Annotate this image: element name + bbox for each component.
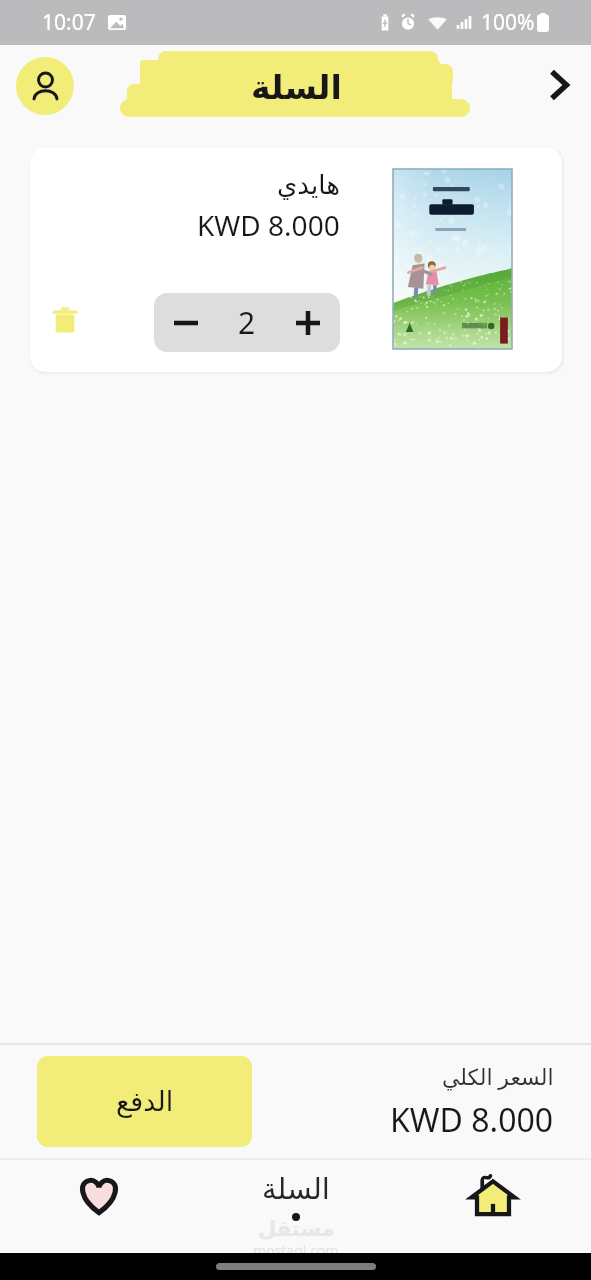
staticText: هايدي bbox=[277, 170, 340, 200]
button[interactable]: Next bbox=[530, 57, 586, 113]
button[interactable]: Home bbox=[394, 1160, 591, 1253]
button[interactable]: Remove item bbox=[42, 298, 88, 344]
button[interactable]: هايدي bbox=[30, 148, 562, 372]
button[interactable]: Decrease quantity bbox=[162, 299, 210, 347]
staticText: 100% bbox=[481, 8, 535, 37]
staticText: KWD 8.000 bbox=[390, 1098, 554, 1142]
button[interactable]: Profile bbox=[16, 57, 74, 115]
staticText: مستقل bbox=[258, 1217, 335, 1241]
button[interactable]: السلة bbox=[197, 1160, 394, 1253]
staticText: السعر الكلي bbox=[442, 1061, 554, 1091]
staticText: السلة bbox=[262, 1172, 330, 1206]
staticText: KWD 8.000 bbox=[197, 206, 340, 244]
staticText: 2 bbox=[238, 302, 256, 343]
button[interactable]: الدفع bbox=[37, 1056, 252, 1147]
staticText: 10:07 bbox=[42, 8, 96, 37]
button[interactable]: Favourites bbox=[0, 1160, 197, 1253]
staticText: الدفع bbox=[116, 1086, 174, 1117]
staticText: mostaql.com bbox=[253, 1241, 339, 1260]
staticText: السلة bbox=[251, 68, 342, 106]
button[interactable]: Increase quantity bbox=[284, 299, 332, 347]
